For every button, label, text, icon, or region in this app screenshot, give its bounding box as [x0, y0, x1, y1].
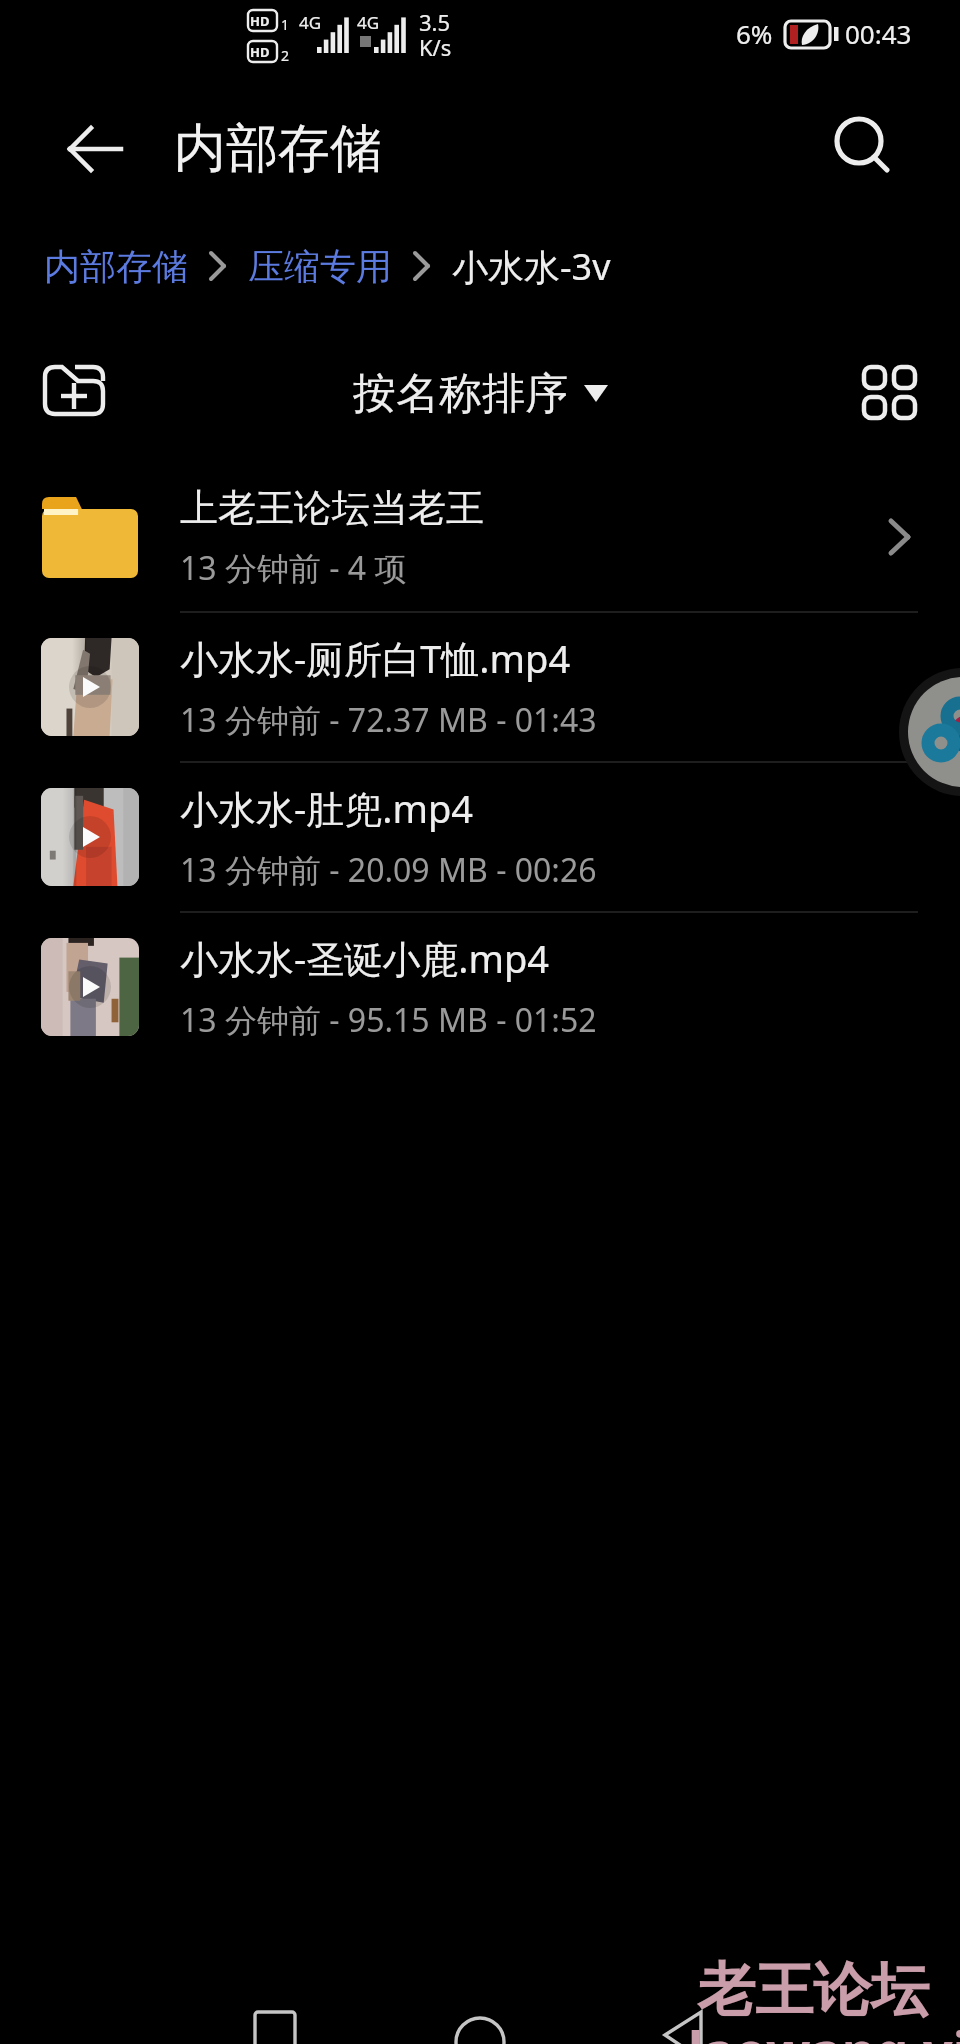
- button[interactable]: New folder: [30, 350, 118, 438]
- button[interactable]: 按名称排序: [341, 357, 620, 431]
- button[interactable]: Grid view: [852, 354, 932, 434]
- staticText: HD: [250, 12, 270, 30]
- staticText: 小水水-3v: [452, 242, 611, 291]
- button[interactable]: 压缩专用: [248, 230, 392, 303]
- button[interactable]: 上老王论坛当老王: [0, 463, 960, 611]
- staticText: 00:43: [845, 16, 912, 51]
- staticText: 上老王论坛当老王: [180, 484, 484, 532]
- staticText: 内部存储: [174, 116, 382, 182]
- button[interactable]: Floating assistant: [898, 667, 960, 797]
- staticText: 13 分钟前 - 4 项: [180, 546, 407, 590]
- staticText: 13 分钟前 - 72.37 MB - 01:43: [180, 698, 597, 742]
- button[interactable]: 内部存储: [44, 230, 188, 303]
- staticText: 小水水-圣诞小鹿.mp4: [180, 932, 550, 984]
- button[interactable]: 小水水-厕所白T恤.mp4: [0, 613, 960, 761]
- button[interactable]: Home: [435, 1964, 525, 2044]
- staticText: 3.5 K/s: [419, 7, 452, 62]
- staticText: 13 分钟前 - 95.15 MB - 01:52: [180, 998, 597, 1042]
- button[interactable]: Back: [640, 1964, 730, 2044]
- staticText: 6%: [736, 16, 773, 51]
- staticText: HD: [250, 43, 270, 61]
- button[interactable]: 小水水-肚兜.mp4: [0, 763, 960, 911]
- button[interactable]: Recents: [230, 1964, 320, 2044]
- staticText: 内部存储: [44, 244, 188, 289]
- staticText: 按名称排序: [353, 367, 568, 421]
- staticText: 13 分钟前 - 20.09 MB - 00:26: [180, 848, 597, 892]
- button[interactable]: Search: [820, 109, 900, 189]
- button[interactable]: Back: [48, 101, 144, 197]
- staticText: 1: [281, 15, 290, 34]
- staticText: 老王论坛: [697, 1954, 929, 2027]
- button[interactable]: 小水水-圣诞小鹿.mp4: [0, 913, 960, 1061]
- staticText: laowang.vip: [688, 2014, 960, 2044]
- staticText: 小水水-肚兜.mp4: [180, 782, 474, 834]
- staticText: 2: [281, 46, 290, 65]
- staticText: 4G: [357, 11, 380, 34]
- staticText: 小水水-厕所白T恤.mp4: [180, 632, 571, 684]
- staticText: 压缩专用: [248, 244, 392, 289]
- staticText: 4G: [299, 11, 322, 34]
